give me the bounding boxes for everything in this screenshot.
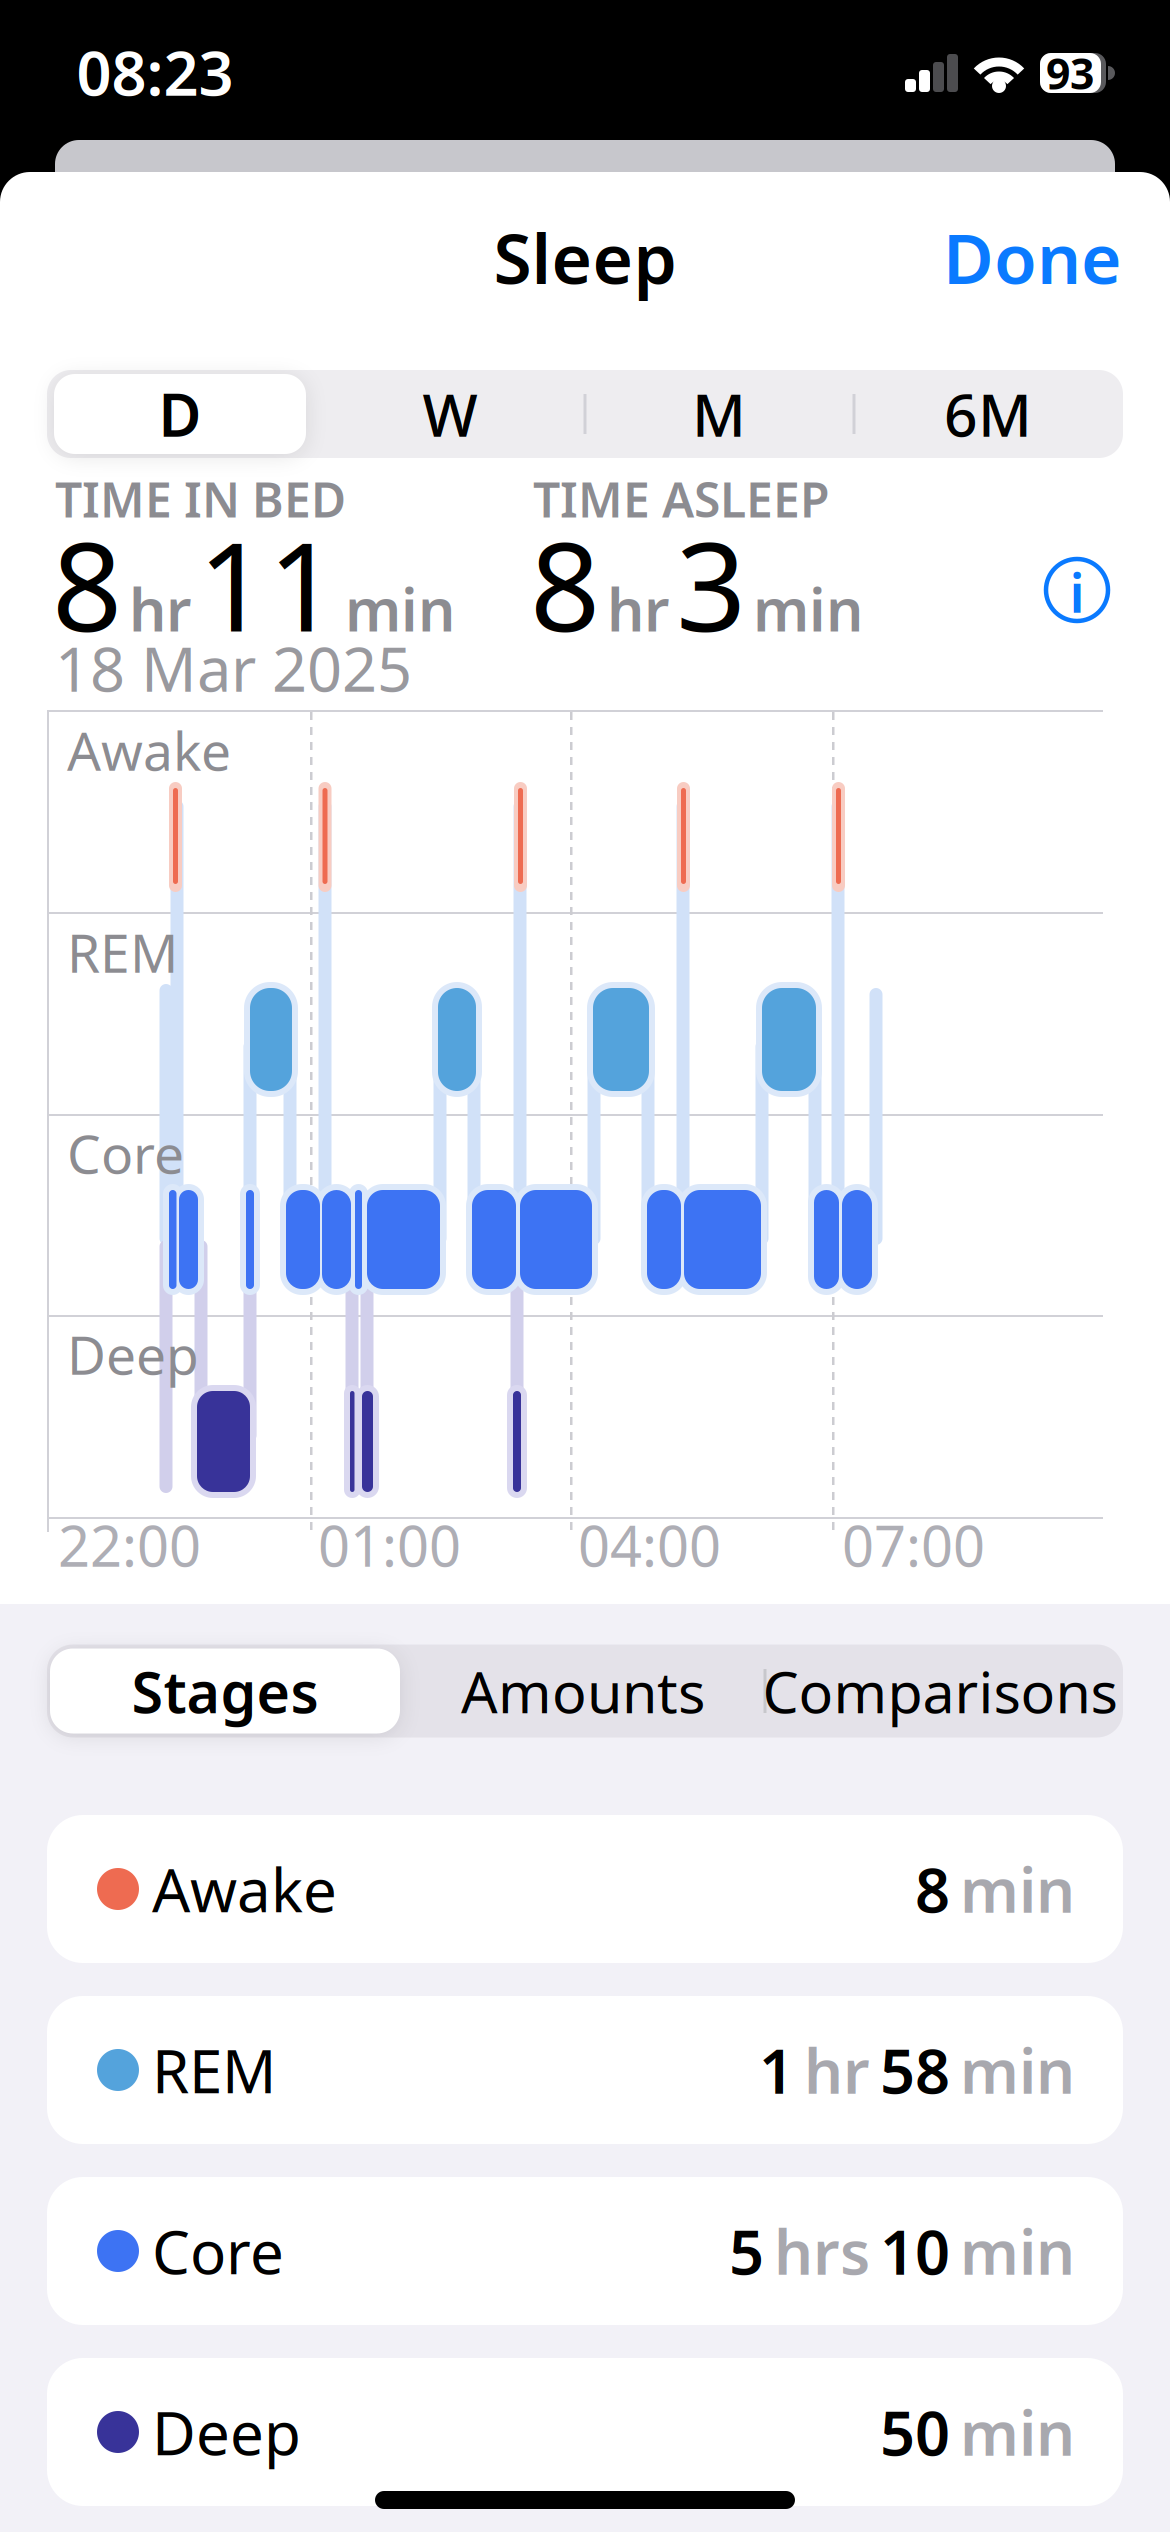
button[interactable]: 6M: [863, 374, 1113, 454]
staticText: 8: [52, 503, 122, 665]
staticText: Amounts: [461, 1653, 705, 1729]
staticText: Stages: [131, 1653, 318, 1729]
staticText: 8: [915, 1848, 950, 1930]
button[interactable]: W: [325, 374, 575, 454]
button[interactable]: Comparisons: [755, 1648, 1125, 1733]
staticText: D: [158, 375, 201, 453]
button[interactable]: More info: [1043, 556, 1111, 624]
staticText: 8: [530, 503, 600, 665]
staticText: 08:23: [76, 31, 233, 113]
button[interactable]: Stages: [50, 1648, 400, 1733]
staticText: hr: [804, 2029, 870, 2111]
button[interactable]: M: [594, 374, 844, 454]
staticText: hrs: [774, 2210, 870, 2292]
staticText: 04:00: [578, 1508, 721, 1582]
staticText: 01:00: [318, 1508, 461, 1582]
button[interactable]: Amounts: [398, 1648, 768, 1733]
button[interactable]: Done: [943, 211, 1122, 303]
staticText: min: [345, 570, 455, 648]
staticText: hr: [607, 570, 669, 648]
staticText: Awake: [67, 715, 231, 785]
staticText: min: [960, 2029, 1075, 2111]
staticText: Core: [152, 2211, 284, 2291]
staticText: 07:00: [842, 1508, 985, 1582]
staticText: W: [422, 375, 477, 453]
staticText: 18 Mar 2025: [55, 627, 412, 709]
staticText: Core: [67, 1118, 184, 1188]
staticText: hr: [129, 570, 191, 648]
staticText: Sleep: [493, 211, 676, 303]
button[interactable]: D: [54, 374, 306, 454]
staticText: Awake: [152, 1849, 337, 1929]
staticText: 1: [759, 2029, 794, 2111]
staticText: Deep: [152, 2392, 301, 2472]
staticText: 6M: [944, 375, 1032, 453]
staticText: Done: [943, 211, 1122, 303]
staticText: 50: [880, 2391, 950, 2473]
staticText: Deep: [67, 1319, 199, 1389]
staticText: M: [692, 375, 746, 453]
staticText: min: [960, 2210, 1075, 2292]
staticText: REM: [152, 2030, 276, 2110]
staticText: i: [1069, 557, 1084, 627]
staticText: Comparisons: [762, 1653, 1117, 1729]
staticText: 11: [198, 503, 338, 665]
staticText: 3: [676, 503, 746, 665]
staticText: REM: [67, 917, 178, 987]
staticText: TIME ASLEEP: [533, 467, 830, 531]
staticText: TIME IN BED: [55, 467, 346, 531]
staticText: min: [960, 1848, 1075, 1930]
staticText: min: [960, 2391, 1075, 2473]
staticText: 5: [729, 2210, 764, 2292]
staticText: 22:00: [58, 1508, 201, 1582]
staticText: min: [753, 570, 863, 648]
staticText: 93: [1046, 45, 1094, 101]
staticText: 10: [880, 2210, 950, 2292]
staticText: 58: [880, 2029, 950, 2111]
